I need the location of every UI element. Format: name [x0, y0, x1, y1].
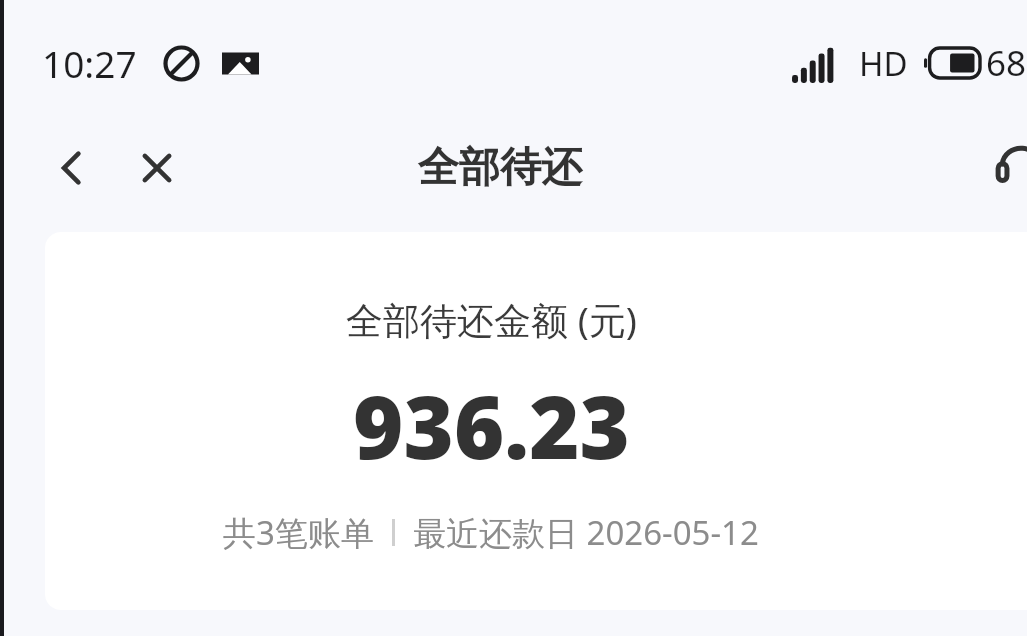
button[interactable]: Close: [129, 140, 185, 196]
staticText: 936.23: [353, 367, 630, 484]
button[interactable]: Customer service: [987, 134, 1027, 202]
staticText: 最近还款日 2026-05-12: [413, 510, 759, 555]
button[interactable]: Back: [44, 140, 100, 196]
staticText: 10:27: [42, 38, 137, 88]
staticText: 全部待还金额 (元): [346, 294, 637, 345]
button[interactable]: 全部待还金额 (元): [45, 232, 1027, 610]
staticText: 全部待还: [418, 142, 582, 194]
staticText: 68: [986, 39, 1027, 87]
staticText: 共3笔账单: [223, 510, 374, 555]
staticText: HD: [859, 41, 908, 86]
